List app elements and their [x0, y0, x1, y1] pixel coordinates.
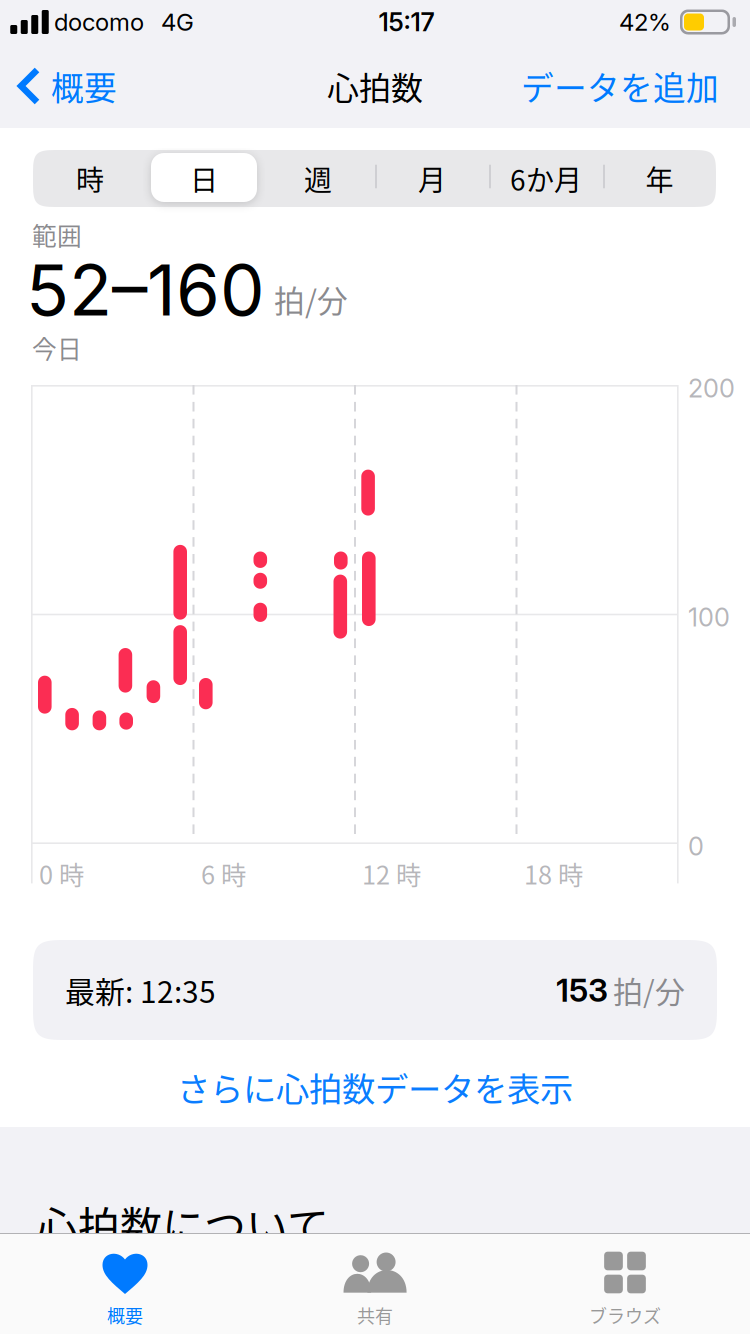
staticText: 概要 [107, 1302, 143, 1328]
button[interactable]: 6か月 [489, 152, 603, 205]
staticText: さらに心拍数データを表示 [177, 1063, 573, 1111]
button[interactable]: 概要 [0, 55, 127, 117]
staticText: 200 [688, 373, 735, 404]
button[interactable]: 年 [603, 152, 716, 205]
staticText: 0 時 [39, 855, 84, 892]
staticText: データを追加 [521, 62, 719, 110]
staticText: 52–160 [26, 247, 265, 332]
staticText: 42% [619, 7, 671, 36]
staticText: 概要 [51, 62, 117, 110]
staticText: 拍/分 [613, 968, 685, 1012]
staticText: 0 [688, 831, 704, 862]
staticText: 18 時 [524, 855, 583, 892]
staticText: docomo [54, 7, 144, 36]
button[interactable]: データを追加 [521, 55, 750, 117]
staticText: 心拍数 [327, 63, 423, 109]
staticText: 100 [688, 602, 730, 633]
staticText: 12 時 [362, 855, 421, 892]
staticText: 6か月 [510, 158, 582, 199]
staticText: 時 [76, 158, 104, 199]
staticText: 週 [304, 158, 332, 199]
button[interactable]: 週 [261, 152, 375, 205]
staticText: 4G [161, 7, 194, 36]
staticText: 153 [556, 971, 608, 1009]
staticText: 日 [190, 158, 218, 199]
staticText: 15:17 [378, 7, 434, 37]
button[interactable]: 概要 [0, 1234, 250, 1334]
staticText: 共有 [357, 1302, 393, 1328]
staticText: ブラウズ [589, 1302, 661, 1328]
button[interactable]: 共有 [250, 1234, 500, 1334]
staticText: 心拍数について [36, 1194, 329, 1255]
button[interactable]: 日 [147, 152, 261, 205]
button[interactable]: 時 [33, 152, 147, 205]
button[interactable]: ブラウズ [500, 1234, 750, 1334]
staticText: 範囲 [32, 217, 82, 253]
button[interactable]: 月 [375, 152, 489, 205]
staticText: 月 [418, 158, 446, 199]
staticText: 今日 [32, 330, 82, 366]
staticText: 最新: 12:35 [65, 968, 216, 1012]
button[interactable]: さらに心拍数データを表示 [0, 1044, 750, 1130]
staticText: 6 時 [201, 855, 246, 892]
staticText: 年 [645, 158, 673, 199]
staticText: 拍/分 [274, 277, 348, 321]
